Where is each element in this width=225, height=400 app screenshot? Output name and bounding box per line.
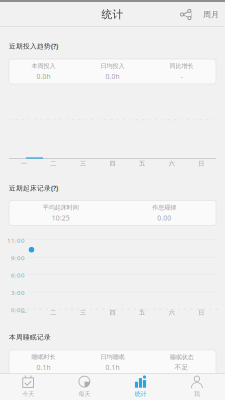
staticText: 作息规律 (152, 204, 176, 211)
button[interactable]: 今天 (0, 373, 56, 400)
staticText: 四 (109, 160, 115, 167)
staticText: 11:00 (7, 236, 25, 245)
staticText: 四 (109, 309, 115, 316)
staticText: 0.1h (36, 363, 50, 372)
staticText: 我 (194, 390, 200, 398)
staticText: 日 (198, 160, 204, 167)
staticText: 本周投入 (31, 62, 55, 70)
staticText: 0.0h (36, 72, 50, 81)
staticText: 同比增长 (169, 62, 193, 70)
staticText: 六 (169, 309, 175, 316)
staticText: 一 (21, 309, 27, 316)
staticText: 9:00 (11, 254, 25, 262)
staticText: 6:00 (11, 271, 25, 279)
staticText: 10:25 (52, 213, 70, 222)
staticText: 二 (50, 309, 56, 316)
staticText: 日均投入 (100, 62, 124, 70)
staticText: 统计 (101, 8, 123, 21)
button[interactable]: 周月 (197, 3, 225, 26)
staticText: 平均起床时间 (43, 204, 79, 211)
staticText: 睡眠状态 (169, 353, 193, 361)
staticText: 0.1h (105, 363, 119, 372)
staticText: - (180, 72, 182, 81)
staticText: 五 (139, 309, 145, 316)
staticText: 近期投入趋势(?) (9, 41, 58, 51)
staticText: 0:00 (11, 306, 25, 314)
staticText: 三 (80, 309, 86, 316)
staticText: 每天 (78, 390, 90, 398)
button[interactable]: 每天 (56, 373, 112, 400)
staticText: 0.00 (157, 213, 171, 222)
staticText: 三 (80, 160, 86, 167)
staticText: 统计 (135, 390, 147, 398)
staticText: 睡眠时长 (31, 353, 55, 361)
staticText: 周月 (203, 9, 219, 20)
staticText: 本周睡眠记录 (9, 333, 51, 341)
staticText: 二 (50, 160, 56, 167)
button[interactable]: 分享 (175, 3, 197, 26)
staticText: 今天 (22, 390, 34, 398)
button[interactable]: 统计 (112, 373, 169, 400)
staticText: 日 (198, 309, 204, 316)
staticText: 近期起床记录(?) (9, 183, 58, 193)
staticText: 五 (139, 160, 145, 167)
staticText: 3:00 (11, 288, 25, 297)
button[interactable]: 我 (169, 373, 225, 400)
staticText: 一 (21, 160, 27, 167)
staticText: 日均睡眠 (100, 353, 124, 361)
staticText: 不足 (174, 363, 188, 372)
staticText: 0.0h (105, 72, 119, 81)
staticText: 六 (169, 160, 175, 167)
